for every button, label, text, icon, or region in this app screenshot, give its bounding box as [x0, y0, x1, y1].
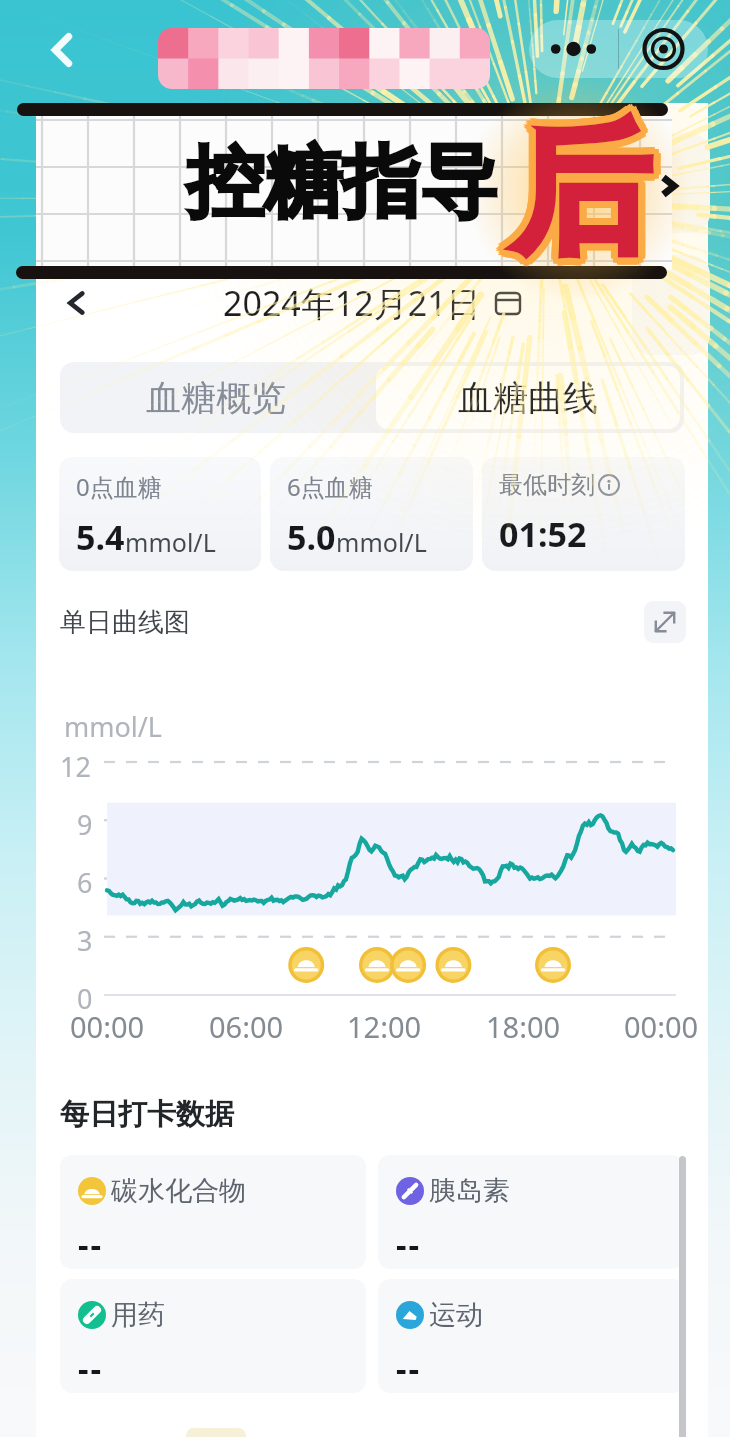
staticText: 9	[77, 806, 93, 843]
staticText: mmol/L	[336, 525, 427, 559]
staticText: 后	[507, 100, 648, 278]
staticText: 后	[507, 106, 648, 284]
staticText: 后	[507, 102, 648, 280]
staticText: 后	[511, 106, 652, 284]
staticText: 每日打卡数据	[60, 1096, 234, 1133]
staticText: 后	[509, 104, 650, 282]
staticText: 5.0	[287, 514, 336, 560]
button[interactable]: 胰岛素	[378, 1155, 684, 1269]
button[interactable]: 血糖曲线	[376, 366, 680, 429]
staticText: 后	[503, 104, 644, 282]
staticText: 运动	[429, 1298, 483, 1332]
staticText: 00:00	[70, 1007, 145, 1046]
staticText: 后	[513, 106, 654, 284]
staticText: 后	[515, 106, 656, 284]
staticText: 00:00	[624, 1007, 699, 1046]
button[interactable]: 用药	[60, 1279, 366, 1393]
staticText: 控糖指导	[186, 134, 498, 232]
button[interactable]: Guidance card	[632, 133, 710, 233]
staticText: 后	[509, 108, 650, 286]
staticText: 2024年12月21日	[223, 280, 481, 326]
staticText: 后	[515, 98, 656, 276]
staticText: 后	[505, 104, 646, 282]
staticText: 后	[505, 108, 646, 286]
staticText: 01:52	[499, 511, 587, 557]
staticText: --	[78, 1222, 104, 1267]
staticText: 后	[509, 102, 650, 280]
staticText: 后	[511, 96, 652, 274]
staticText: 血糖曲线	[458, 376, 598, 420]
button[interactable]: 0点血糖	[59, 457, 261, 571]
staticText: 后	[511, 102, 652, 280]
staticText: 后	[509, 110, 650, 288]
staticText: 后	[515, 104, 656, 282]
staticText: 后	[517, 104, 658, 282]
staticText: 12:00	[347, 1007, 422, 1046]
staticText: 后	[505, 102, 646, 280]
staticText: 后	[511, 98, 652, 276]
staticText: 胰岛素	[429, 1174, 510, 1208]
staticText: 后	[515, 100, 656, 278]
staticText: 后	[513, 108, 654, 286]
staticText: mmol/L	[64, 708, 162, 745]
staticText: 06:00	[209, 1007, 284, 1046]
staticText: 后	[505, 100, 646, 278]
staticText: 后	[509, 106, 650, 284]
staticText: 后	[511, 108, 652, 286]
staticText: 后	[509, 100, 650, 278]
staticText: 12	[60, 748, 91, 785]
staticText: 后	[509, 98, 650, 276]
staticText: 后	[509, 96, 650, 274]
button[interactable]: 最低时刻	[482, 457, 685, 571]
staticText: 5.4	[76, 514, 125, 560]
staticText: mmol/L	[125, 525, 216, 559]
staticText: 后	[507, 104, 648, 282]
staticText: 6	[77, 864, 93, 901]
staticText: 后	[513, 100, 654, 278]
button[interactable]: 6点血糖	[270, 457, 473, 571]
staticText: 后	[517, 102, 658, 280]
staticText: --	[396, 1222, 422, 1267]
staticText: 0点血糖	[76, 470, 162, 503]
button[interactable]: 碳水化合物	[60, 1155, 366, 1269]
staticText: 后	[510, 103, 651, 281]
staticText: 后	[513, 104, 654, 282]
button[interactable]: Expand chart	[644, 601, 686, 643]
staticText: 后	[507, 108, 648, 286]
staticText: 后	[503, 102, 644, 280]
staticText: 0	[77, 980, 93, 1017]
staticText: 后	[511, 104, 652, 282]
staticText: 最低时刻	[499, 470, 595, 500]
staticText: 3	[77, 922, 93, 959]
staticText: 后	[513, 102, 654, 280]
button[interactable]: Close mini program	[619, 20, 708, 78]
button[interactable]: Back	[38, 26, 86, 74]
staticText: 后	[511, 100, 652, 278]
staticText: 后	[505, 106, 646, 284]
staticText: --	[78, 1346, 104, 1391]
staticText: 后	[505, 98, 646, 276]
button[interactable]: More options	[529, 20, 618, 78]
staticText: 后	[507, 98, 648, 276]
staticText: 用药	[111, 1298, 165, 1332]
staticText: --	[396, 1346, 422, 1391]
staticText: 后	[511, 110, 652, 288]
staticText: 后	[515, 108, 656, 286]
staticText: 后	[515, 102, 656, 280]
staticText: 单日曲线图	[60, 606, 190, 639]
button[interactable]: 血糖概览	[60, 362, 372, 433]
button[interactable]: Previous day	[36, 279, 112, 327]
button[interactable]: Next day	[632, 279, 708, 327]
staticText: 18:00	[486, 1007, 561, 1046]
staticText: 后	[513, 98, 654, 276]
staticText: 6点血糖	[287, 470, 373, 503]
staticText: 血糖概览	[146, 376, 286, 420]
button[interactable]: 运动	[378, 1279, 684, 1393]
staticText: 碳水化合物	[111, 1174, 246, 1208]
